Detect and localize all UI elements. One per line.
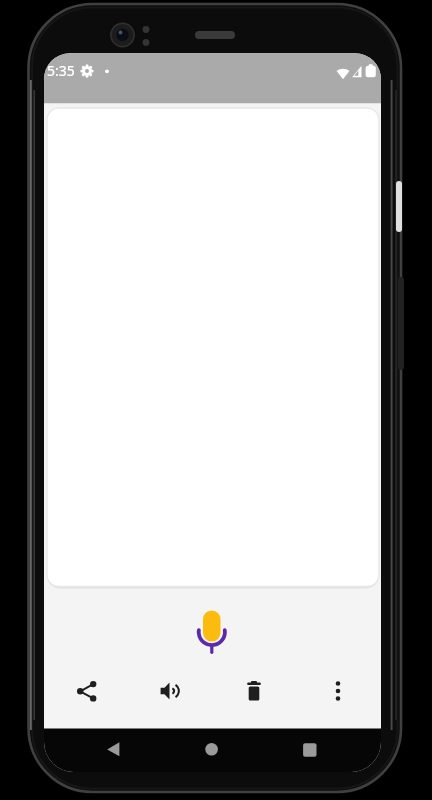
button[interactable] <box>192 729 232 769</box>
button[interactable] <box>93 729 133 769</box>
button[interactable] <box>233 670 275 712</box>
button[interactable] <box>188 598 236 658</box>
button[interactable] <box>290 729 330 769</box>
button[interactable] <box>65 670 107 712</box>
button[interactable] <box>149 670 191 712</box>
button[interactable] <box>317 670 359 712</box>
staticText: 5:35 <box>47 61 75 80</box>
